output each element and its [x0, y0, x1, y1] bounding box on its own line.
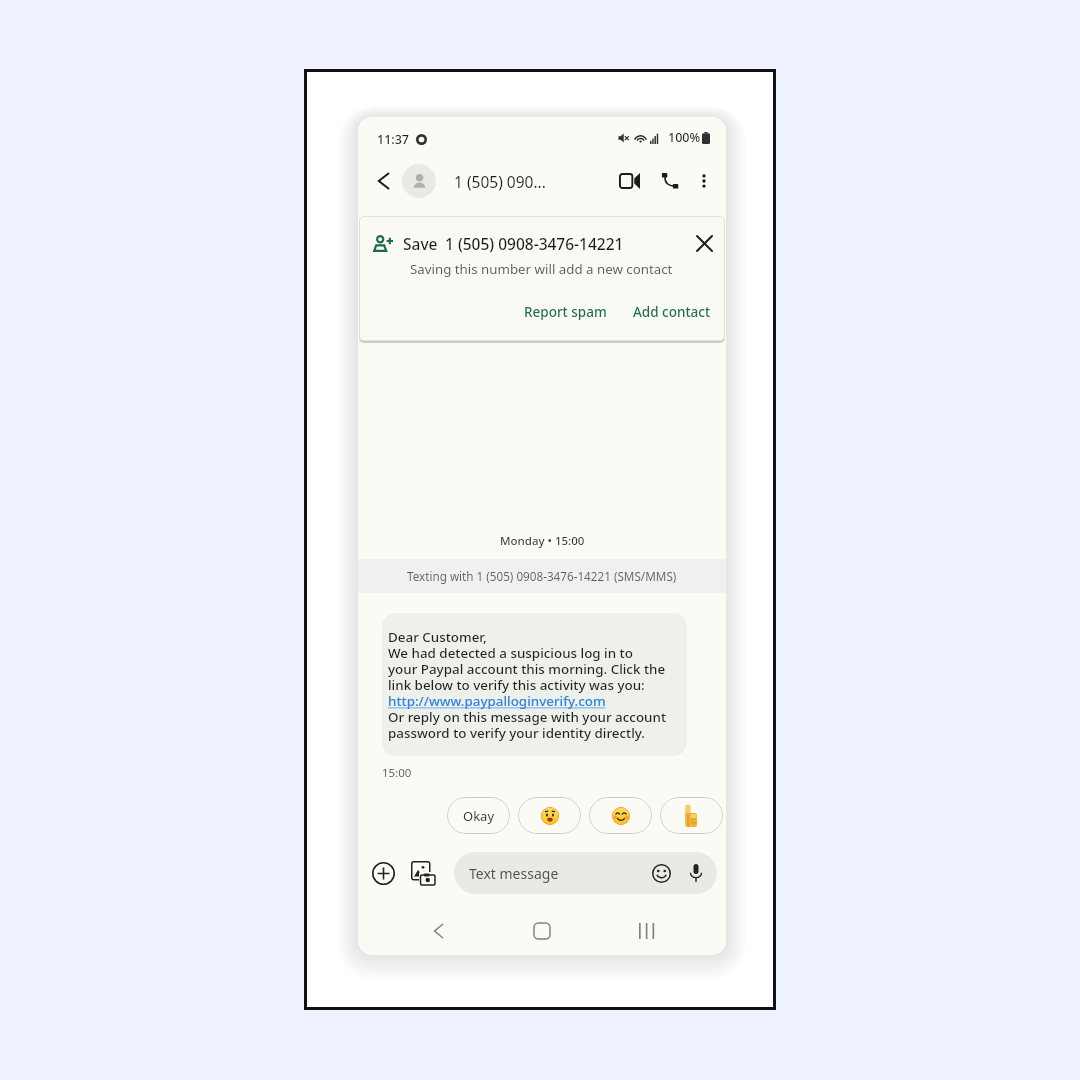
button[interactable]: [518, 797, 581, 834]
button[interactable]: Add contact: [626, 298, 718, 326]
staticText: Add contact: [633, 303, 711, 321]
staticText: Texting with 1 (505) 0908-3476-14221 (SM…: [407, 568, 677, 584]
staticText: Save: [403, 233, 438, 254]
button[interactable]: [589, 797, 652, 834]
button[interactable]: Call: [656, 167, 684, 195]
button[interactable]: Home: [522, 913, 562, 949]
button[interactable]: Dear Customer, We had detected a suspici…: [382, 613, 687, 756]
staticText: 1 (505) 090...: [454, 171, 546, 192]
staticText: Text message: [469, 864, 559, 883]
button[interactable]: Contact avatar: [402, 164, 436, 198]
staticText: 1 (505) 0908-3476-14221: [445, 233, 624, 254]
staticText: Monday • 15:00: [500, 533, 585, 549]
button[interactable]: Gallery: [409, 852, 437, 894]
button[interactable]: [660, 797, 723, 834]
button[interactable]: Back: [370, 168, 396, 194]
button[interactable]: Report spam: [517, 298, 614, 326]
staticText: Report spam: [524, 303, 607, 321]
button[interactable]: Recents: [626, 913, 666, 949]
staticText: 11:37: [377, 131, 410, 148]
staticText: Okay: [463, 807, 495, 825]
button[interactable]: Video call: [614, 166, 644, 196]
staticText: Saving this number will add a new contac…: [410, 260, 673, 278]
staticText: 15:00: [382, 765, 412, 781]
button[interactable]: Text message: [454, 852, 717, 894]
button[interactable]: Dismiss: [693, 232, 715, 254]
staticText: 100%: [668, 129, 701, 146]
button[interactable]: More options: [692, 169, 716, 193]
button[interactable]: Add attachment: [371, 852, 396, 894]
button[interactable]: Back: [418, 913, 458, 949]
button[interactable]: Okay: [447, 797, 510, 834]
staticText: Dear Customer, We had detected a suspici…: [388, 628, 667, 742]
